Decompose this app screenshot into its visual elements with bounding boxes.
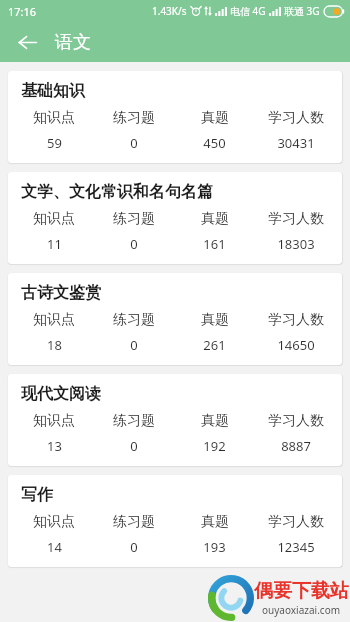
staticText: 1.43K/s [152, 4, 187, 18]
button[interactable]: Back [11, 26, 43, 58]
staticText: 现代文阅读 [21, 384, 101, 404]
staticText: 古诗文鉴赏 [21, 283, 101, 303]
staticText: 偶要下载站 [254, 579, 349, 603]
staticText: 18 [47, 336, 62, 354]
staticText: 真题 [201, 109, 229, 127]
staticText: 11 [47, 235, 62, 253]
staticText: 14 [47, 538, 62, 556]
staticText: 真题 [201, 412, 229, 430]
staticText: 学习人数 [268, 412, 324, 430]
staticText: 17:16 [8, 4, 37, 19]
staticText: 学习人数 [268, 109, 324, 127]
staticText: 18303 [277, 235, 315, 253]
staticText: 8887 [281, 437, 311, 455]
staticText: 练习题 [113, 210, 155, 228]
staticText: 练习题 [113, 513, 155, 531]
staticText: 0 [130, 437, 138, 455]
staticText: 450 [203, 134, 226, 152]
staticText: 文学、文化常识和名句名篇 [21, 182, 213, 202]
staticText: 真题 [201, 311, 229, 329]
staticText: 59 [47, 134, 62, 152]
staticText: 0 [130, 538, 138, 556]
staticText: 学习人数 [268, 210, 324, 228]
button[interactable]: 古诗文鉴赏 [8, 273, 342, 365]
staticText: 学习人数 [268, 513, 324, 531]
staticText: 261 [203, 336, 226, 354]
staticText: 学习人数 [268, 311, 324, 329]
staticText: 基础知识 [21, 81, 85, 101]
staticText: 193 [203, 538, 226, 556]
button[interactable]: 写作 [8, 475, 342, 567]
staticText: 练习题 [113, 109, 155, 127]
staticText: 12345 [277, 538, 315, 556]
staticText: 练习题 [113, 412, 155, 430]
staticText: 真题 [201, 210, 229, 228]
staticText: 知识点 [33, 311, 75, 329]
button[interactable]: 现代文阅读 [8, 374, 342, 466]
staticText: ouyaoxiazai.com [262, 603, 341, 617]
staticText: 知识点 [33, 210, 75, 228]
staticText: 14650 [277, 336, 315, 354]
button[interactable]: 基础知识 [8, 71, 342, 163]
staticText: 161 [203, 235, 226, 253]
staticText: 0 [130, 134, 138, 152]
staticText: 语文 [55, 31, 91, 54]
staticText: 知识点 [33, 513, 75, 531]
staticText: 知识点 [33, 412, 75, 430]
staticText: 练习题 [113, 311, 155, 329]
staticText: 0 [130, 235, 138, 253]
staticText: 30431 [277, 134, 315, 152]
staticText: 13 [47, 437, 62, 455]
staticText: 联通 3G [284, 4, 320, 18]
staticText: 0 [130, 336, 138, 354]
staticText: 真题 [201, 513, 229, 531]
staticText: 写作 [21, 485, 53, 505]
button[interactable]: 文学、文化常识和名句名篇 [8, 172, 342, 264]
staticText: 192 [203, 437, 226, 455]
staticText: 知识点 [33, 109, 75, 127]
staticText: 电信 4G [230, 4, 266, 18]
